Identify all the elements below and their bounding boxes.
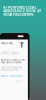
- staticText: Talk to a solicitor: [1, 74, 23, 77]
- staticText: AI POWERED LEGAL ASSISTANCE NOW AT YOUR …: [3, 5, 41, 17]
- staticText: advice on family law that can be trusted: [1, 58, 25, 64]
- staticText: Search: [12, 52, 18, 54]
- staticText: Learn more about our services and fees: [1, 66, 22, 71]
- staticText: T: [20, 42, 24, 49]
- staticText: Dictate: [2, 52, 8, 54]
- staticText: family law: [1, 42, 13, 45]
